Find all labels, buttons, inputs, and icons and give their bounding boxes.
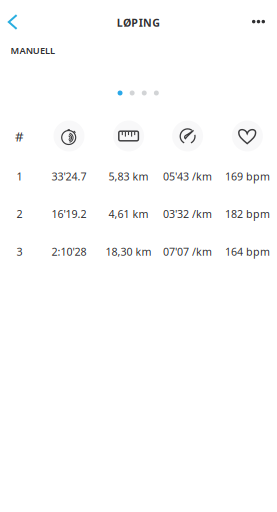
staticText: 03'32 /km [163,207,212,221]
staticText: 33'24.7 [51,169,86,183]
staticText: # [15,127,24,145]
staticText: 182 bpm [225,207,270,221]
staticText: LØPING [117,15,160,30]
staticText: 5,83 km [109,169,149,183]
button[interactable]: Back [7,5,35,39]
staticText: 18,30 km [106,244,152,259]
staticText: 3 [16,244,22,259]
staticText: 4,61 km [109,207,149,221]
staticText: 16'19.2 [51,207,86,221]
staticText: 05'43 /km [163,169,212,183]
staticText: 169 bpm [225,169,270,183]
staticText: 2:10'28 [51,244,86,259]
staticText: 1 [16,169,22,183]
staticText: 2 [16,207,22,221]
staticText: 07'07 /km [163,244,212,259]
staticText: MANUELL [10,44,55,56]
button[interactable]: More options [234,7,273,36]
staticText: 164 bpm [225,244,270,259]
